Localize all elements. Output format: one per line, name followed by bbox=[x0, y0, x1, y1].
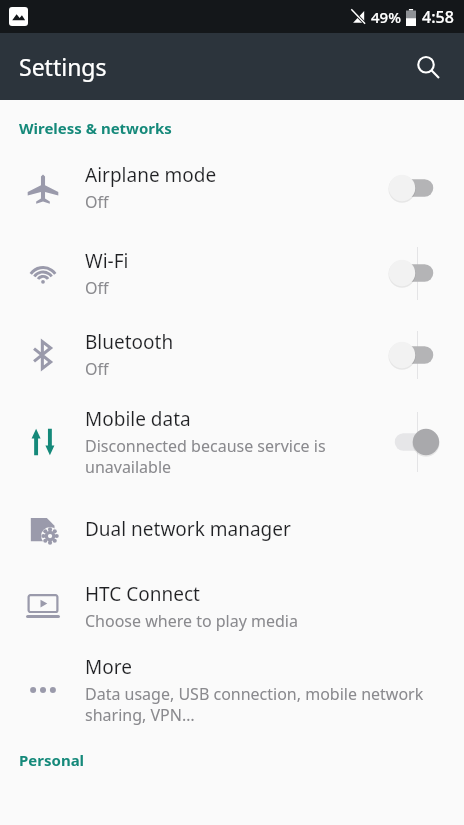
button[interactable]: Mobile data switch bbox=[384, 420, 444, 464]
button[interactable]: Wi-Fi bbox=[0, 230, 464, 316]
staticText: Off bbox=[85, 191, 109, 213]
button[interactable]: HTC Connect bbox=[0, 567, 464, 645]
staticText: Dual network manager bbox=[85, 516, 291, 542]
button[interactable]: Dual network manager bbox=[0, 490, 464, 567]
staticText: Settings bbox=[19, 51, 107, 82]
button[interactable]: Airplane mode bbox=[0, 145, 464, 230]
staticText: Disconnected because service is unavaila… bbox=[85, 435, 354, 478]
staticText: Wi-Fi bbox=[85, 248, 129, 274]
staticText: Bluetooth bbox=[85, 329, 174, 355]
staticText: Choose where to play media bbox=[85, 610, 298, 632]
staticText: Off bbox=[85, 358, 109, 380]
staticText: Data usage, USB connection, mobile netwo… bbox=[85, 683, 440, 726]
button[interactable]: Search bbox=[406, 45, 450, 89]
staticText: Off bbox=[85, 277, 109, 299]
staticText: Airplane mode bbox=[85, 162, 217, 188]
staticText: 4:58 bbox=[422, 6, 454, 28]
staticText: 49% bbox=[371, 7, 401, 27]
staticText: Wireless & networks bbox=[19, 118, 172, 138]
staticText: Mobile data bbox=[85, 406, 191, 432]
button[interactable]: Bluetooth switch bbox=[384, 333, 444, 377]
staticText: Personal bbox=[19, 750, 85, 770]
button[interactable]: Wi-Fi switch bbox=[384, 251, 444, 295]
staticText: HTC Connect bbox=[85, 581, 200, 607]
button[interactable]: Mobile data bbox=[0, 393, 464, 490]
button[interactable]: Airplane mode switch bbox=[384, 166, 444, 210]
button[interactable]: More bbox=[0, 645, 464, 735]
staticText: More bbox=[85, 654, 132, 680]
button[interactable]: Bluetooth bbox=[0, 316, 464, 393]
